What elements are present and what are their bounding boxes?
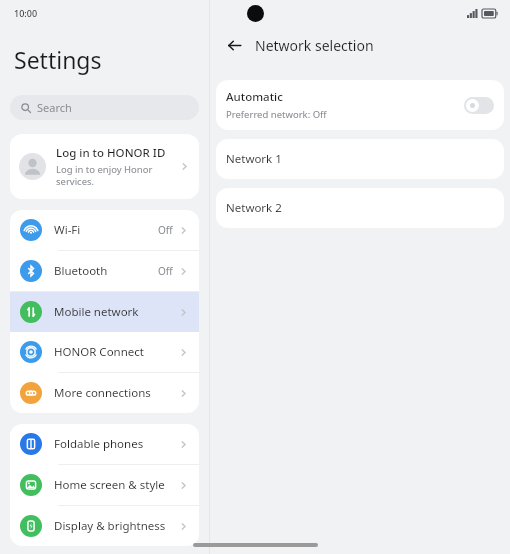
staticText: Automatic (226, 89, 283, 105)
button[interactable]: HONOR Connect (10, 332, 199, 372)
button[interactable]: Automatic (216, 80, 504, 130)
button[interactable]: Search (10, 95, 199, 120)
staticText: Foldable phones (54, 436, 178, 452)
button[interactable]: Mobile network (10, 292, 199, 332)
staticText: Wi-Fi (54, 222, 158, 238)
button[interactable]: Log in to HONOR ID (10, 134, 199, 199)
button[interactable]: Automatic network toggle (464, 97, 494, 114)
staticText: Preferred network: Off (226, 108, 327, 121)
staticText: Network 2 (226, 200, 282, 216)
button[interactable]: Bluetooth (10, 251, 199, 291)
staticText: Off (158, 223, 173, 237)
button[interactable]: Network 2 (216, 188, 504, 228)
staticText: Settings (14, 44, 102, 75)
button[interactable]: Wi-Fi (10, 210, 199, 250)
staticText: Off (158, 264, 173, 278)
staticText: Log in to enjoy Honor services. (56, 163, 179, 188)
staticText: Log in to HONOR ID (56, 145, 166, 161)
staticText: Home screen & style (54, 477, 178, 493)
staticText: 10:00 (14, 7, 38, 19)
button[interactable]: Display & brightness (10, 506, 199, 546)
button[interactable]: Foldable phones (10, 424, 199, 464)
staticText: Bluetooth (54, 263, 158, 279)
button[interactable]: Back (222, 33, 246, 57)
staticText: Display & brightness (54, 518, 178, 534)
staticText: HONOR Connect (54, 344, 178, 360)
button[interactable]: Home screen & style (10, 465, 199, 505)
button[interactable]: Network 1 (216, 139, 504, 179)
button[interactable]: More connections (10, 373, 199, 413)
staticText: More connections (54, 385, 178, 401)
staticText: Network selection (255, 36, 374, 55)
staticText: Search (37, 100, 72, 115)
staticText: Mobile network (54, 304, 178, 320)
staticText: Network 1 (226, 151, 282, 167)
